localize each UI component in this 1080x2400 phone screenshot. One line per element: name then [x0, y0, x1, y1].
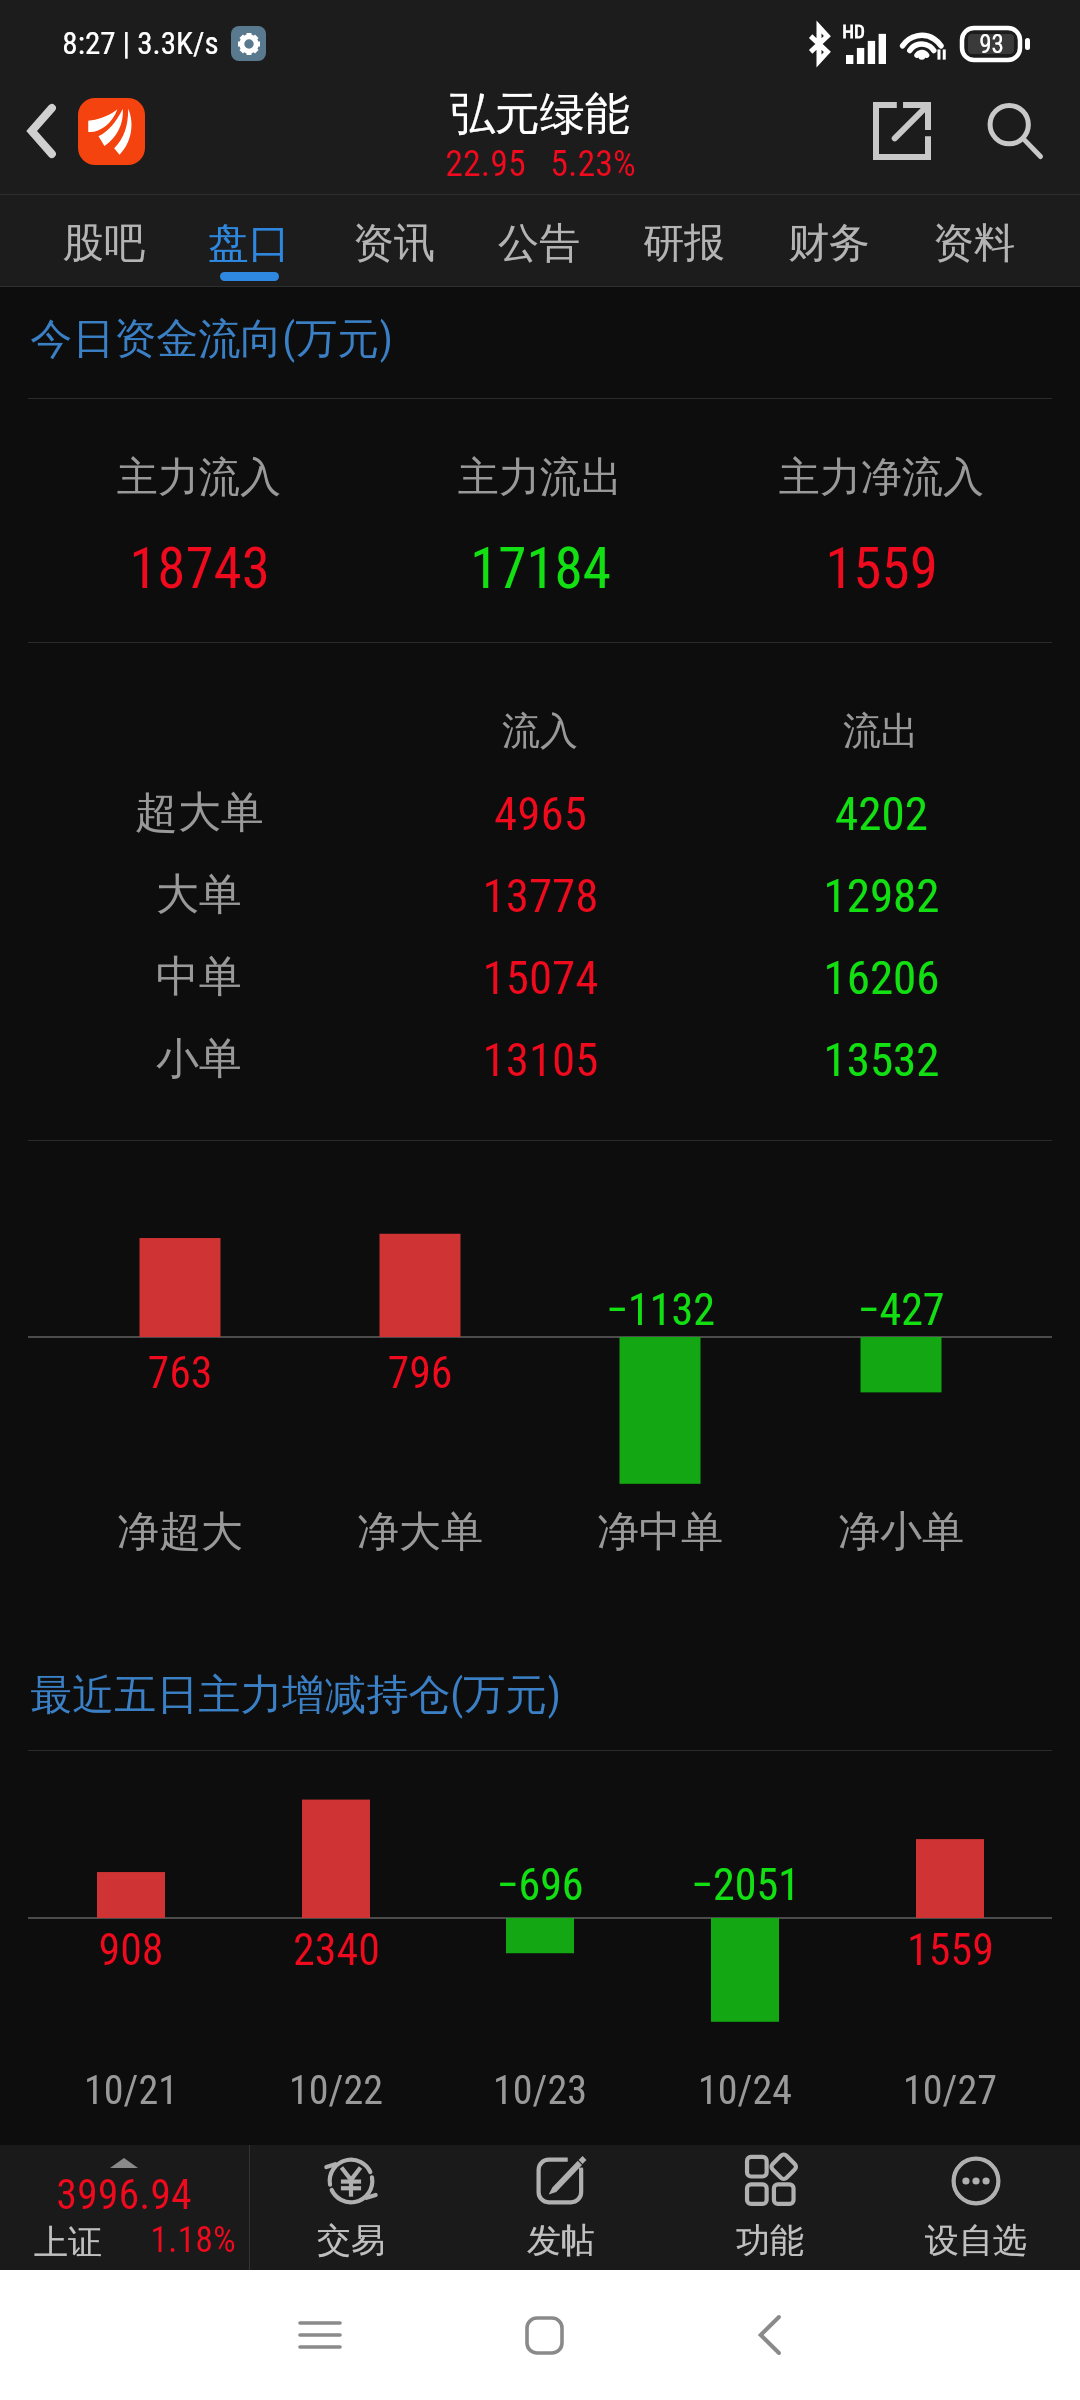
button[interactable]: 发帖	[471, 2145, 651, 2270]
button[interactable]: 股吧	[32, 194, 176, 287]
button[interactable]: Recent apps	[280, 2295, 360, 2375]
staticText: 发帖	[527, 2219, 595, 2262]
staticText: 功能	[736, 2219, 804, 2262]
staticText: 流入	[502, 707, 578, 755]
staticText: 1.18%	[150, 2219, 236, 2261]
button[interactable]: 资料	[902, 194, 1046, 287]
staticText: 主力流入	[117, 452, 281, 504]
staticText: 交易	[317, 2219, 385, 2262]
staticText: 908	[98, 1924, 164, 1976]
staticText: 流出	[843, 707, 919, 755]
staticText: 10/24	[698, 2067, 792, 2114]
staticText: 1559	[825, 535, 938, 602]
staticText: 13532	[823, 1032, 940, 1087]
staticText: −696	[496, 1859, 584, 1911]
staticText: 13778	[482, 868, 599, 923]
button[interactable]: 设自选	[886, 2145, 1066, 2270]
button[interactable]: 功能	[680, 2145, 860, 2270]
staticText: 净大单	[357, 1506, 483, 1559]
staticText: 上证	[34, 2221, 102, 2264]
staticText: 资讯	[353, 218, 435, 270]
staticText: 大单	[156, 868, 242, 922]
staticText: 资料	[933, 218, 1015, 270]
staticText: 93	[979, 30, 1004, 59]
button[interactable]: Share	[860, 89, 944, 173]
staticText: −2051	[691, 1859, 800, 1911]
staticText: 4965	[494, 786, 587, 841]
staticText: 16206	[823, 950, 940, 1005]
button[interactable]: 研报	[612, 194, 756, 287]
staticText: 10/21	[84, 2067, 178, 2114]
staticText: 17184	[470, 535, 611, 602]
staticText: 12982	[823, 868, 940, 923]
staticText: 2340	[293, 1924, 380, 1976]
staticText: 今日资金流向(万元)	[30, 313, 393, 366]
button[interactable]: 公告	[467, 194, 611, 287]
staticText: 5.23%	[550, 143, 636, 185]
button[interactable]: 交易	[261, 2145, 441, 2270]
staticText: 13105	[482, 1032, 599, 1087]
staticText: 设自选	[925, 2219, 1027, 2262]
staticText: 研报	[643, 218, 725, 270]
staticText: 10/22	[289, 2067, 383, 2114]
staticText: HD	[842, 20, 865, 42]
button[interactable]: Search	[973, 89, 1057, 173]
button[interactable]: Back	[729, 2295, 809, 2375]
staticText: 主力净流入	[779, 452, 984, 504]
staticText: 4202	[835, 786, 928, 841]
staticText: 15074	[482, 950, 599, 1005]
staticText: 小单	[156, 1032, 242, 1086]
button[interactable]: Eastmoney home	[78, 98, 145, 165]
staticText: 796	[387, 1347, 453, 1399]
staticText: 盘口	[208, 218, 290, 270]
staticText: 18743	[129, 535, 270, 602]
staticText: 净中单	[597, 1506, 723, 1559]
staticText: 净小单	[838, 1506, 964, 1559]
staticText: 1559	[907, 1924, 994, 1976]
staticText: 净超大	[117, 1506, 243, 1559]
staticText: 弘元绿能	[450, 86, 630, 143]
button[interactable]: Back	[0, 76, 84, 186]
staticText: 3996.94	[56, 2170, 192, 2219]
staticText: 中单	[156, 950, 242, 1004]
staticText: 财务	[788, 218, 870, 270]
staticText: 公告	[498, 218, 580, 270]
button[interactable]: 资讯	[322, 194, 466, 287]
staticText: 22.95	[445, 143, 526, 185]
button[interactable]: 3996.94	[0, 2145, 249, 2270]
staticText: 763	[147, 1347, 213, 1399]
button[interactable]: 财务	[757, 194, 901, 287]
button[interactable]: 盘口	[177, 194, 321, 287]
staticText: −1132	[606, 1284, 715, 1336]
button[interactable]: Home	[504, 2295, 584, 2375]
staticText: 最近五日主力增减持仓(万元)	[30, 1669, 561, 1722]
staticText: 8:27 | 3.3K/s	[62, 25, 219, 61]
staticText: 主力流出	[458, 452, 622, 504]
staticText: 超大单	[135, 786, 264, 840]
staticText: 10/27	[903, 2067, 997, 2114]
staticText: −427	[857, 1284, 945, 1336]
staticText: 股吧	[63, 218, 145, 270]
staticText: 10/23	[493, 2067, 587, 2114]
